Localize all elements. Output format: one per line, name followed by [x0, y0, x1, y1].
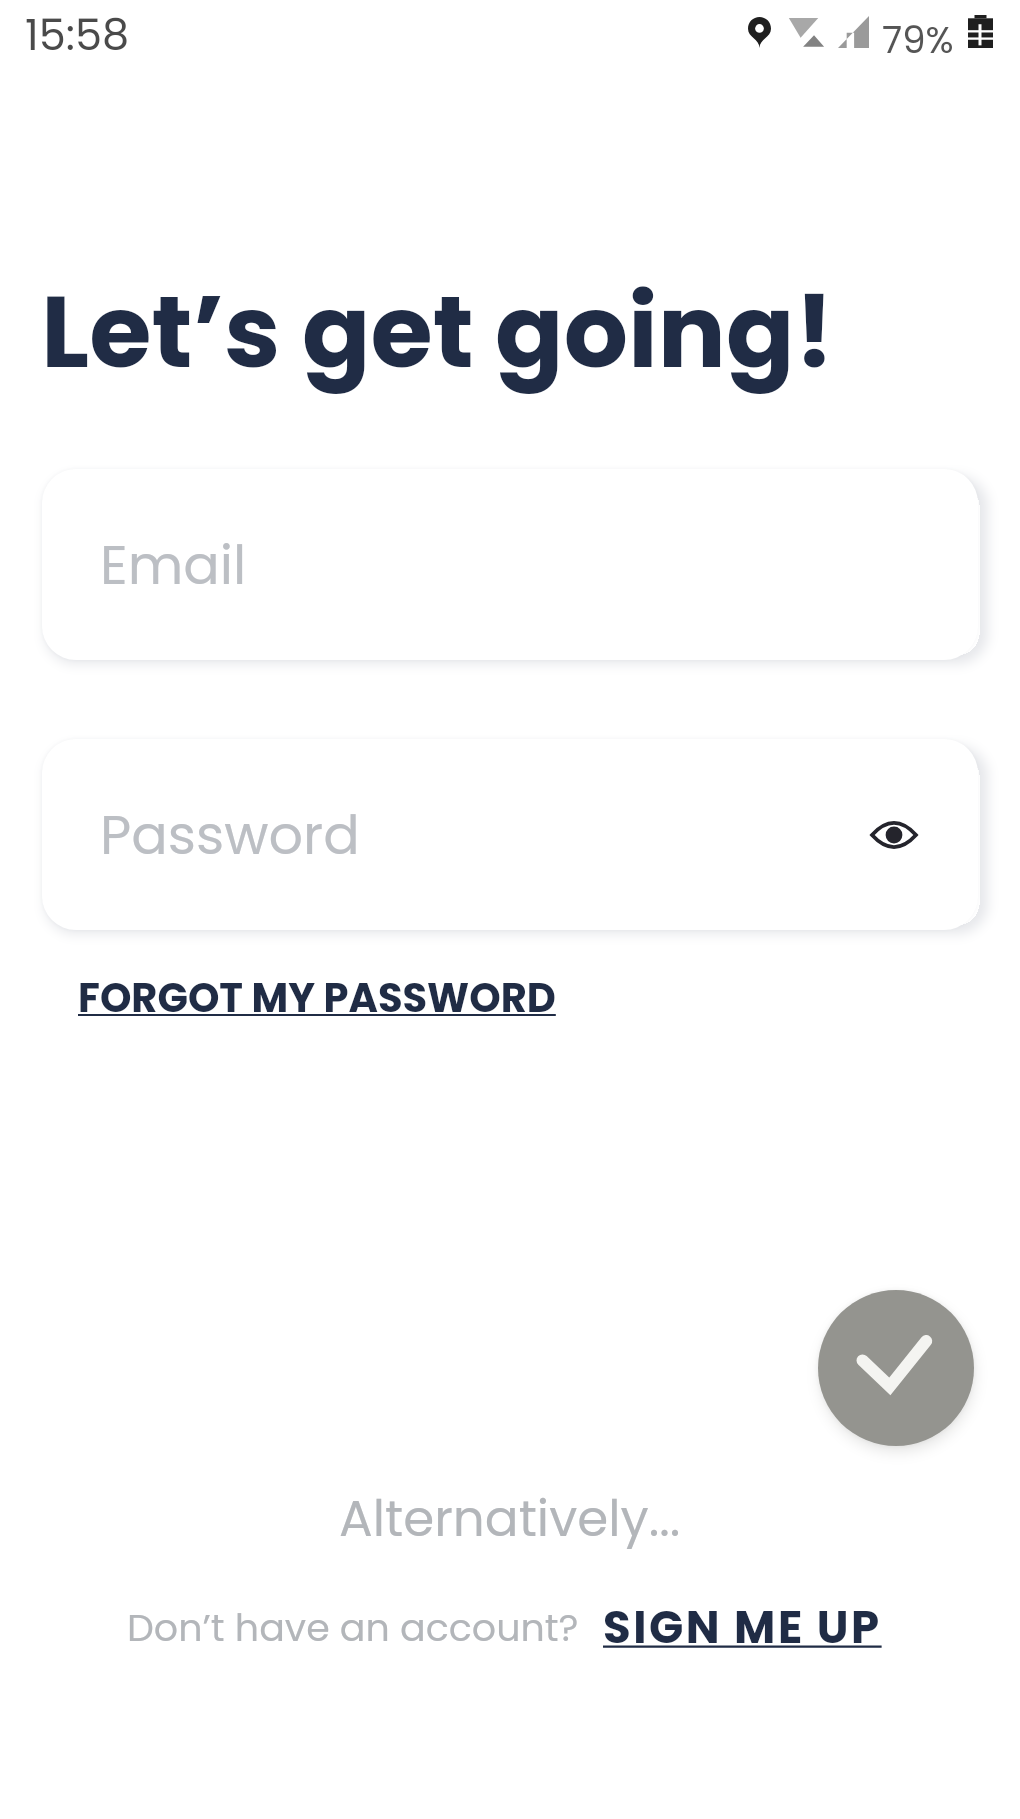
staticText: SIGN ME UP [603, 1596, 882, 1659]
staticText: 15:58 [25, 5, 130, 65]
button[interactable]: Email [42, 469, 978, 660]
button[interactable]: Password [42, 739, 978, 930]
staticText: Let’s get going! [41, 261, 835, 402]
staticText: 79% [882, 14, 954, 66]
staticText: Alternatively... [339, 1484, 681, 1554]
button[interactable]: Sign in [818, 1290, 974, 1446]
staticText: Email [100, 527, 247, 603]
button[interactable]: FORGOT MY PASSWORD [78, 970, 556, 1026]
staticText: Don’t have an account? [127, 1601, 579, 1654]
button[interactable]: SIGN ME UP [603, 1596, 882, 1659]
staticText: FORGOT MY PASSWORD [78, 970, 556, 1026]
button[interactable]: Show password [866, 807, 922, 863]
staticText: Password [100, 797, 360, 873]
